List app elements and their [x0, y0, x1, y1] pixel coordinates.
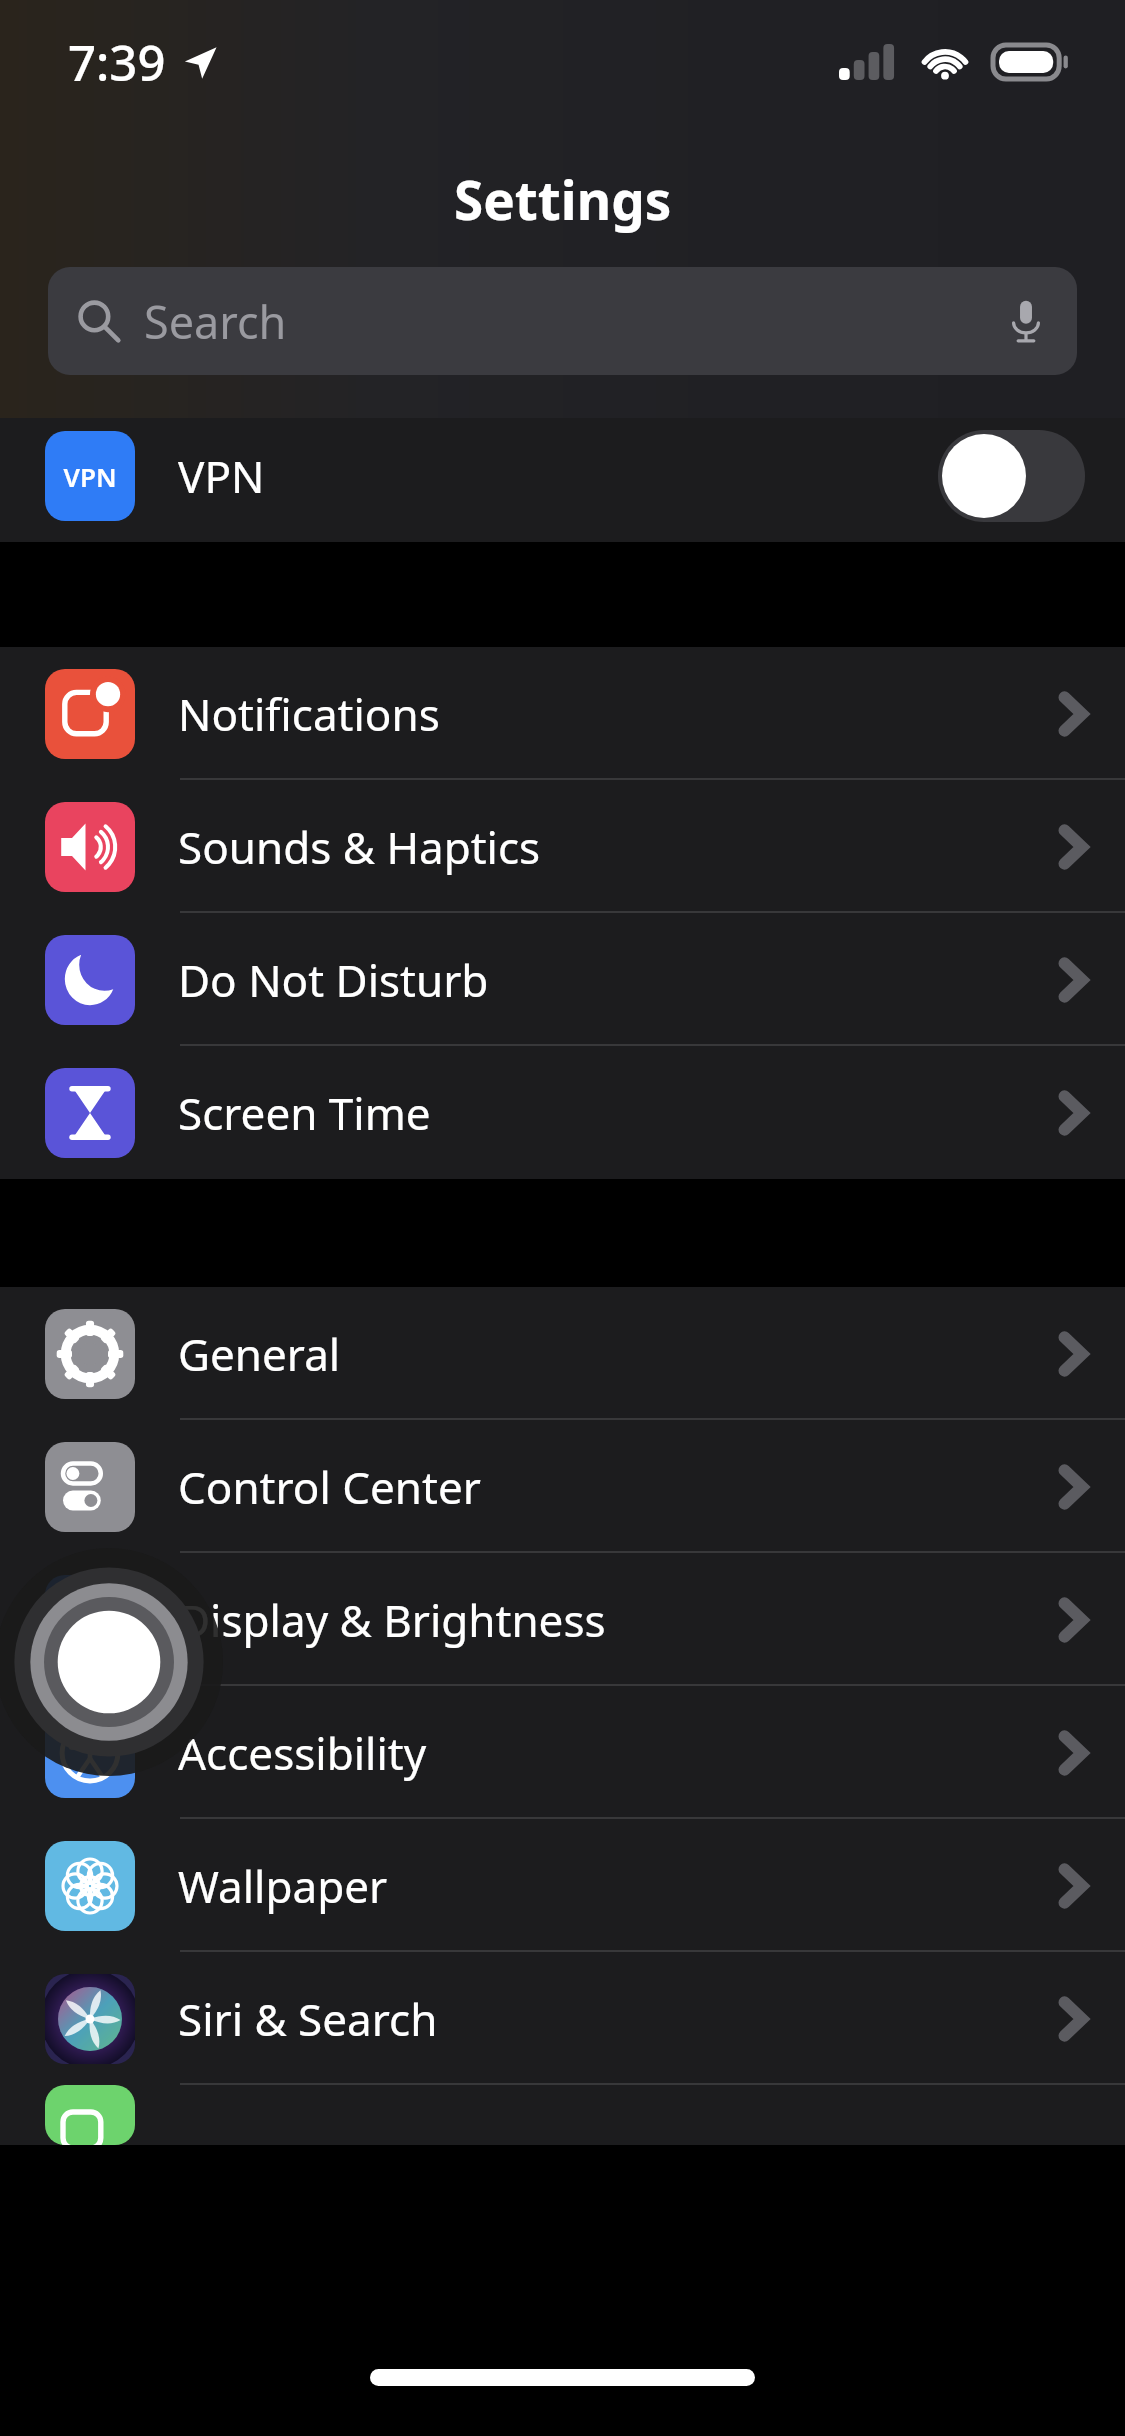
- staticText: Display & Brightness: [178, 1590, 606, 1650]
- button[interactable]: Siri & Search: [0, 1952, 1125, 2085]
- button[interactable]: Accessibility: [0, 1686, 1125, 1819]
- staticText: AA: [67, 1597, 113, 1643]
- button[interactable]: Sounds & Haptics: [0, 780, 1125, 913]
- button[interactable]: AA: [0, 1553, 1125, 1686]
- staticText: Notifications: [178, 684, 440, 744]
- button[interactable]: AssistiveTouch: [0, 1548, 223, 1776]
- button[interactable]: Notifications: [0, 647, 1125, 780]
- button[interactable]: Personal Hotspot: [0, 276, 1125, 409]
- other: Voice search: [1003, 298, 1049, 344]
- staticText: Accessibility: [178, 1723, 427, 1783]
- staticText: General: [178, 1324, 341, 1384]
- staticText: Wallpaper: [178, 1856, 388, 1916]
- staticText: VPN: [63, 459, 117, 494]
- button[interactable]: General: [0, 1287, 1125, 1420]
- button[interactable]: Control Center: [0, 1420, 1125, 1553]
- staticText: Off: [969, 313, 1034, 373]
- button[interactable]: Cellular: [0, 143, 1125, 276]
- button[interactable]: Search: [48, 267, 1077, 375]
- staticText: Sounds & Haptics: [178, 817, 541, 877]
- button[interactable]: VPN: [0, 409, 1125, 542]
- staticText: Screen Time: [178, 1083, 431, 1143]
- button[interactable]: Do Not Disturb: [0, 913, 1125, 1046]
- staticText: VPN: [178, 446, 265, 506]
- staticText: Siri & Search: [178, 1989, 438, 2049]
- staticText: Search: [144, 291, 287, 352]
- staticText: Settings: [454, 163, 672, 235]
- staticText: Control Center: [178, 1457, 481, 1517]
- staticText: Personal Hotspot: [178, 313, 536, 373]
- button[interactable]: VPN toggle: [938, 430, 1085, 522]
- staticText: 7:39: [68, 29, 166, 96]
- staticText: Do Not Disturb: [178, 950, 489, 1010]
- button[interactable]: Wallpaper: [0, 1819, 1125, 1952]
- button[interactable]: Screen Time: [0, 1046, 1125, 1179]
